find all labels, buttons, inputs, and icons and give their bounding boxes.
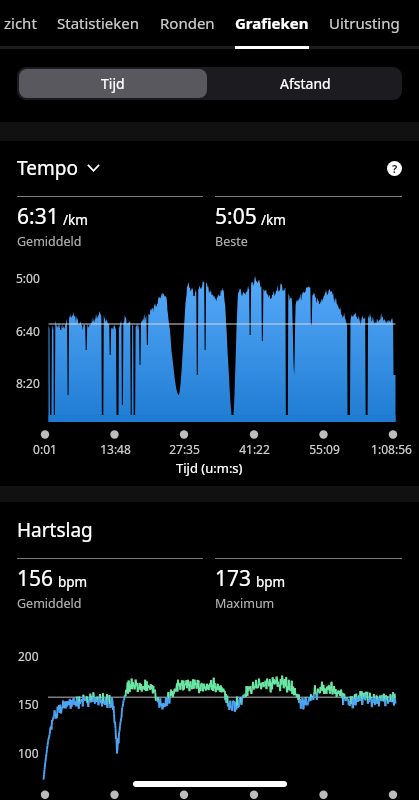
staticText: Gemiddeld (17, 233, 82, 250)
staticText: 173 (215, 564, 252, 593)
staticText: 200 (18, 648, 39, 664)
staticText: Tijd (101, 74, 125, 93)
staticText: /km (261, 211, 286, 229)
staticText: 5:00 (16, 270, 40, 286)
button[interactable]: Hartslag (17, 517, 93, 543)
staticText: 6:31 (17, 202, 59, 231)
button[interactable]: Afstand (209, 67, 402, 100)
staticText: Maximum (215, 595, 275, 612)
button[interactable]: zicht (0, 0, 47, 50)
staticText: Afstand (280, 74, 331, 93)
staticText: 6:40 (16, 323, 40, 339)
staticText: /km (63, 211, 88, 229)
staticText: Grafieken (235, 13, 309, 33)
staticText: Hartslag (17, 517, 93, 543)
button[interactable]: Tempo (17, 155, 100, 181)
staticText: Beste (215, 233, 248, 250)
staticText: 13:48 (100, 441, 131, 457)
staticText: ? (392, 161, 398, 176)
staticText: 41:22 (239, 441, 270, 457)
button[interactable]: Grafieken (225, 0, 319, 50)
staticText: 8:20 (16, 375, 40, 391)
staticText: 5:05 (215, 202, 257, 231)
staticText: Statistieken (57, 13, 140, 33)
staticText: 55:09 (309, 441, 340, 457)
staticText: Ronden (160, 13, 215, 33)
staticText: 150 (18, 696, 39, 712)
staticText: 156 (17, 564, 54, 593)
staticText: zicht (4, 13, 37, 33)
staticText: 100 (18, 745, 39, 761)
staticText: 0:01 (33, 441, 57, 457)
staticText: 27:35 (169, 441, 200, 457)
staticText: bpm (58, 573, 88, 591)
button[interactable]: Help (387, 161, 402, 176)
button[interactable]: Uitrusting (319, 0, 410, 50)
staticText: bpm (256, 573, 286, 591)
staticText: Tijd (u:m:s) (176, 459, 243, 477)
staticText: Uitrusting (329, 13, 400, 33)
staticText: 1:08:56 (371, 441, 412, 457)
button[interactable]: Tijd (19, 69, 207, 98)
button[interactable]: Ronden (150, 0, 225, 50)
button[interactable]: Statistieken (47, 0, 150, 50)
staticText: Gemiddeld (17, 595, 82, 612)
staticText: Tempo (17, 155, 78, 181)
